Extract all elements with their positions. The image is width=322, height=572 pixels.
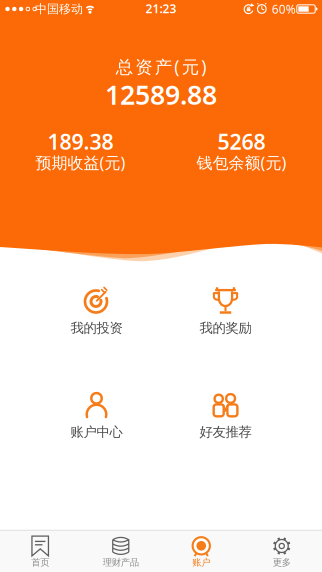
button[interactable]: 我的投资 — [36, 273, 156, 343]
staticText: 12589.88 — [105, 77, 217, 112]
staticText: 189.38 — [47, 127, 113, 156]
staticText: 5268 — [217, 127, 265, 156]
button[interactable]: 账户 — [161, 530, 241, 572]
staticText: 账户中心 — [70, 424, 122, 440]
button[interactable]: 好友推荐 — [165, 377, 285, 447]
button[interactable]: 理财产品 — [80, 530, 161, 572]
staticText: 好友推荐 — [199, 424, 251, 440]
button[interactable]: 我的奖励 — [165, 273, 285, 343]
button[interactable]: 首页 — [0, 530, 80, 572]
staticText: 60% — [272, 1, 296, 17]
button[interactable]: 账户中心 — [36, 377, 156, 447]
staticText: 首页 — [31, 557, 49, 568]
staticText: 总资产(元) — [116, 55, 206, 78]
staticText: 我的奖励 — [199, 320, 251, 336]
button[interactable]: 更多 — [241, 530, 322, 572]
staticText: 理财产品 — [103, 557, 139, 568]
staticText: 钱包余额(元) — [196, 152, 286, 173]
staticText: 21:23 — [145, 0, 176, 16]
staticText: 账户 — [192, 557, 210, 568]
staticText: 中国移动 — [35, 2, 83, 16]
staticText: 更多 — [273, 557, 291, 568]
staticText: 我的投资 — [70, 320, 122, 336]
staticText: 预期收益(元) — [35, 152, 125, 173]
